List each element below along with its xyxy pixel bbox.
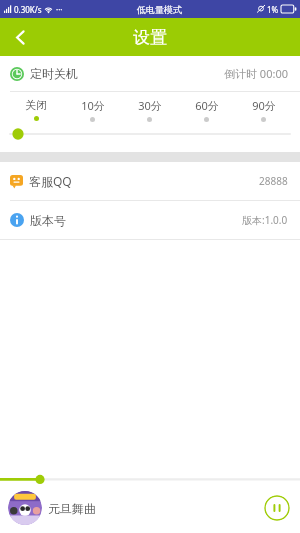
button[interactable]: 定时关机 (0, 56, 300, 91)
staticText: 28888 (259, 174, 288, 188)
staticText: 10分 (81, 98, 105, 113)
staticText: 0.30K/s (14, 4, 42, 15)
button[interactable] (0, 126, 300, 142)
staticText: 元旦舞曲 (48, 501, 96, 516)
button[interactable]: 客服QQ (0, 162, 300, 200)
button[interactable] (8, 491, 42, 525)
staticText: 设置 (133, 27, 167, 48)
staticText: 客服QQ (29, 173, 72, 189)
staticText: 30分 (138, 98, 162, 113)
staticText: 90分 (252, 98, 276, 113)
staticText: 1% (267, 4, 279, 15)
staticText: ··· (56, 4, 63, 15)
staticText: 倒计时 00:00 (224, 66, 288, 81)
staticText: 定时关机 (30, 66, 78, 81)
staticText: 版本号 (30, 213, 66, 228)
staticText: 60分 (195, 98, 219, 113)
staticText: 关闭 (25, 98, 47, 112)
button[interactable]: 版本号 (0, 201, 300, 239)
button[interactable]: Pause (264, 495, 290, 521)
button[interactable]: Back (0, 18, 40, 56)
staticText: 版本:1.0.0 (242, 213, 288, 227)
staticText: 低电量模式 (137, 4, 182, 15)
